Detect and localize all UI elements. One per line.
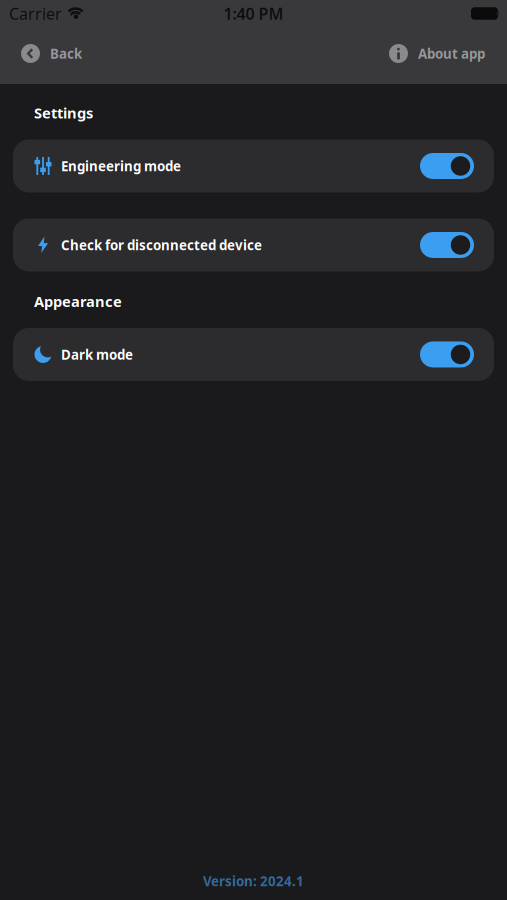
- staticText: Appearance: [34, 291, 122, 311]
- staticText: Dark mode: [61, 346, 133, 363]
- button[interactable]: About app: [389, 44, 507, 63]
- staticText: Check for disconnected device: [61, 236, 262, 254]
- staticText: About app: [418, 45, 485, 62]
- button[interactable]: Back: [0, 44, 82, 63]
- staticText: 1:40 PM: [223, 3, 283, 24]
- staticText: Settings: [34, 103, 93, 122]
- staticText: Carrier: [9, 3, 62, 24]
- staticText: Back: [50, 45, 82, 62]
- button[interactable]: Engineering mode: [420, 153, 474, 179]
- button[interactable]: Check for disconnected device: [420, 232, 474, 258]
- staticText: Engineering mode: [61, 157, 181, 175]
- staticText: Version: 2024.1: [203, 872, 304, 890]
- button[interactable]: Dark mode: [420, 341, 474, 367]
